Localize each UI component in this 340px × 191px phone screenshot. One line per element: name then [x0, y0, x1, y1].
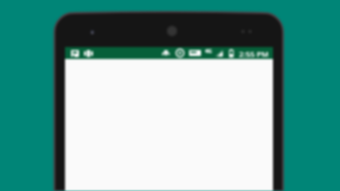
button[interactable]: Alarm set [162, 47, 170, 59]
staticText: 2:55 PM [239, 49, 269, 60]
button[interactable]: Screenshot captured [71, 47, 79, 59]
staticText: 4G [205, 47, 212, 54]
button[interactable]: Signal strength [215, 47, 223, 59]
button[interactable]: Mobile data [189, 47, 201, 59]
button[interactable]: Do not disturb [176, 47, 184, 59]
button[interactable]: Contacts sync [84, 47, 93, 59]
button[interactable]: Battery [229, 47, 233, 59]
button[interactable] [65, 59, 273, 191]
